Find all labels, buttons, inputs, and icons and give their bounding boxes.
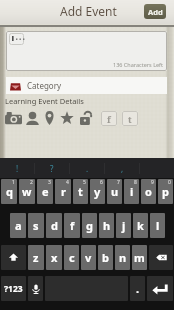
button[interactable]: 6 bbox=[90, 179, 105, 204]
button[interactable]: Add bbox=[144, 4, 166, 19]
staticText: r bbox=[61, 184, 66, 199]
button[interactable]: h bbox=[99, 213, 114, 238]
staticText: 1 bbox=[12, 179, 15, 186]
staticText: c bbox=[69, 250, 75, 265]
button[interactable]: s bbox=[28, 213, 44, 238]
button[interactable]: . bbox=[130, 276, 145, 301]
button[interactable]: a bbox=[10, 213, 26, 238]
staticText: Add bbox=[148, 7, 163, 17]
button[interactable]: Category bbox=[6, 77, 167, 94]
button[interactable]: v bbox=[81, 245, 96, 270]
button[interactable]: Voice input bbox=[28, 276, 43, 301]
staticText: Category bbox=[27, 80, 62, 91]
staticText: a bbox=[15, 218, 22, 233]
staticText: z bbox=[33, 250, 39, 265]
button[interactable]: d bbox=[46, 213, 62, 238]
button[interactable]: 5 bbox=[73, 179, 88, 204]
staticText: 8 bbox=[134, 179, 137, 186]
button[interactable]: Twitter bbox=[122, 111, 138, 126]
button[interactable]: Favourite bbox=[58, 109, 76, 127]
staticText: 136 Characters Left bbox=[113, 61, 164, 68]
staticText: . bbox=[136, 281, 140, 296]
button[interactable]: g bbox=[82, 213, 97, 238]
staticText: g bbox=[86, 218, 93, 233]
staticText: e bbox=[42, 184, 49, 199]
button[interactable]: Privacy bbox=[76, 109, 95, 127]
button[interactable]: ! bbox=[0, 158, 34, 178]
button[interactable]: Add person bbox=[24, 109, 41, 127]
staticText: o bbox=[145, 184, 152, 199]
staticText: d bbox=[51, 218, 58, 233]
button[interactable]: 4 bbox=[55, 179, 71, 204]
staticText: h bbox=[103, 218, 111, 233]
button[interactable]: Enter bbox=[147, 276, 173, 301]
staticText: p bbox=[162, 184, 169, 199]
staticText: l bbox=[156, 218, 160, 233]
staticText: . bbox=[86, 163, 89, 174]
staticText: j bbox=[122, 218, 126, 233]
staticText: Learning Event Details bbox=[5, 96, 84, 106]
button[interactable]: Facebook bbox=[101, 111, 117, 126]
button[interactable]: b bbox=[98, 245, 113, 270]
button[interactable]: 8 bbox=[124, 179, 139, 204]
staticText: ! bbox=[16, 163, 19, 174]
staticText: y bbox=[94, 184, 101, 199]
staticText: 0 bbox=[168, 179, 171, 186]
button[interactable]: Shift bbox=[1, 245, 26, 270]
staticText: 3 bbox=[48, 179, 51, 186]
button[interactable]: ?123 bbox=[1, 276, 26, 301]
button[interactable]: x bbox=[46, 245, 62, 270]
staticText: Add Event bbox=[60, 3, 117, 19]
staticText: m bbox=[134, 250, 145, 265]
staticText: 6 bbox=[100, 179, 103, 186]
staticText: i bbox=[130, 184, 134, 199]
button[interactable]: f bbox=[64, 213, 80, 238]
button[interactable]: Add photo bbox=[3, 109, 24, 127]
staticText: k bbox=[137, 218, 144, 233]
staticText: w bbox=[22, 184, 32, 199]
staticText: f bbox=[107, 113, 111, 125]
staticText: q bbox=[6, 184, 13, 199]
staticText: 2 bbox=[30, 179, 33, 186]
button[interactable]: n bbox=[115, 245, 130, 270]
staticText: u bbox=[111, 184, 119, 199]
button[interactable]: , bbox=[105, 158, 139, 178]
staticText: 5 bbox=[83, 179, 86, 186]
staticText: t bbox=[78, 184, 83, 199]
button[interactable]: 9 bbox=[141, 179, 156, 204]
button[interactable]: 2 bbox=[19, 179, 35, 204]
staticText: ? bbox=[50, 163, 54, 174]
button[interactable]: j bbox=[116, 213, 131, 238]
staticText: 4 bbox=[66, 179, 69, 186]
staticText: b bbox=[102, 250, 109, 265]
button[interactable]: m bbox=[132, 245, 147, 270]
staticText: s bbox=[33, 218, 39, 233]
staticText: n bbox=[119, 250, 127, 265]
staticText: v bbox=[85, 250, 92, 265]
staticText: f bbox=[70, 218, 75, 233]
button[interactable]: 7 bbox=[107, 179, 122, 204]
staticText: , bbox=[121, 163, 124, 174]
button[interactable]: l bbox=[150, 213, 165, 238]
button[interactable]: c bbox=[64, 245, 79, 270]
button[interactable]: Add location bbox=[41, 109, 58, 127]
button[interactable]: ? bbox=[35, 158, 69, 178]
button[interactable]: k bbox=[133, 213, 148, 238]
button[interactable]: 1 bbox=[1, 179, 17, 204]
staticText: t bbox=[128, 113, 132, 125]
staticText: 9 bbox=[151, 179, 154, 186]
staticText: 7 bbox=[117, 179, 120, 186]
button[interactable]: Backspace bbox=[149, 245, 173, 270]
button[interactable]: 136 Characters Left bbox=[6, 31, 167, 71]
staticText: ?123 bbox=[4, 283, 23, 295]
button[interactable]: z bbox=[28, 245, 44, 270]
button[interactable]: 0 bbox=[158, 179, 173, 204]
button[interactable]: 3 bbox=[37, 179, 53, 204]
staticText: x bbox=[51, 250, 58, 265]
